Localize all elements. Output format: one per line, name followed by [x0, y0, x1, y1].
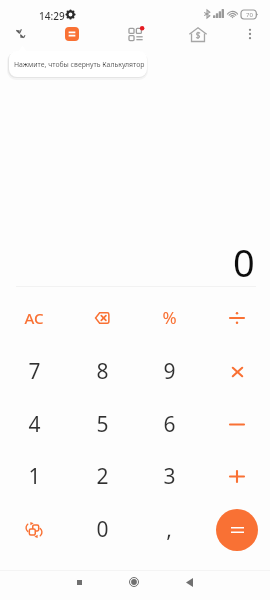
button[interactable]: Нажмите, чтобы свернуть Калькулятор: [9, 51, 147, 77]
staticText: 5: [96, 410, 109, 439]
button[interactable]: Equals: [203, 503, 270, 556]
button[interactable]: Payments: [189, 26, 207, 44]
button[interactable]: 4: [0, 398, 68, 451]
button[interactable]: AC: [0, 291, 68, 344]
button[interactable]: 2: [68, 450, 136, 503]
staticText: 7: [28, 357, 41, 386]
staticText: AC: [24, 308, 44, 328]
button[interactable]: Apps: [127, 26, 145, 44]
button[interactable]: Minimize: [10, 24, 30, 44]
button[interactable]: Backspace: [68, 291, 136, 344]
button[interactable]: Plus: [203, 450, 270, 503]
button[interactable]: 3: [135, 450, 203, 503]
button[interactable]: Convert units: [0, 503, 68, 556]
button[interactable]: Multiply: [203, 345, 270, 398]
staticText: 8: [96, 357, 109, 386]
staticText: 1: [28, 462, 41, 491]
button[interactable]: 9: [135, 345, 203, 398]
staticText: 6: [163, 410, 176, 439]
staticText: Нажмите, чтобы свернуть Калькулятор: [14, 60, 145, 69]
staticText: 70: [246, 11, 253, 19]
staticText: 9: [163, 357, 176, 386]
staticText: %: [162, 306, 177, 329]
button[interactable]: 1: [0, 450, 68, 503]
staticText: 4: [28, 410, 41, 439]
button[interactable]: 7: [0, 345, 68, 398]
staticText: 2: [96, 462, 109, 491]
button[interactable]: Recents: [64, 567, 94, 597]
button[interactable]: Back: [174, 567, 204, 597]
staticText: 0: [96, 515, 109, 544]
button[interactable]: More options: [241, 25, 259, 43]
button[interactable]: Divide: [203, 291, 270, 344]
button[interactable]: %: [135, 291, 203, 344]
button[interactable]: Calculator: [65, 27, 79, 41]
button[interactable]: 0: [68, 503, 136, 556]
button[interactable]: Home: [119, 567, 149, 597]
button[interactable]: ,: [135, 503, 203, 556]
staticText: 0: [233, 236, 255, 286]
button[interactable]: 5: [68, 398, 136, 451]
button[interactable]: [216, 509, 258, 551]
button[interactable]: Minus: [203, 398, 270, 451]
staticText: 3: [163, 462, 176, 491]
button[interactable]: 8: [68, 345, 136, 398]
staticText: ,: [166, 515, 172, 544]
button[interactable]: 6: [135, 398, 203, 451]
staticText: 14:29: [39, 9, 65, 23]
